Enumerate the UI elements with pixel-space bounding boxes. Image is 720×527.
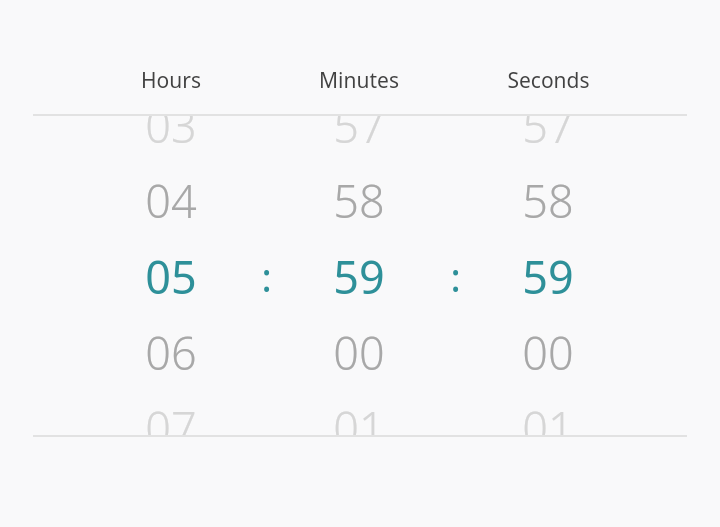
staticText: 00	[333, 322, 385, 383]
staticText: 01	[333, 397, 385, 436]
button[interactable]: Minutes	[259, 62, 459, 98]
staticText: Seconds	[507, 66, 590, 95]
button[interactable]: Seconds	[448, 62, 648, 98]
staticText: 58	[522, 170, 574, 231]
staticText: 58	[333, 170, 385, 231]
staticText: 07	[145, 397, 197, 436]
staticText: 59	[522, 246, 574, 307]
staticText: Hours	[141, 66, 201, 95]
staticText: 00	[522, 322, 574, 383]
staticText: 01	[522, 397, 574, 436]
button[interactable]: Hours picker	[96, 114, 246, 436]
staticText: 59	[333, 246, 385, 307]
staticText: 05	[145, 246, 197, 307]
staticText: Minutes	[319, 66, 399, 95]
staticText: 06	[145, 322, 197, 383]
staticText: 57	[333, 114, 385, 156]
button[interactable]: Seconds picker	[473, 114, 623, 436]
button[interactable]: Minutes picker	[284, 114, 434, 436]
staticText: :	[450, 249, 461, 303]
staticText: 57	[522, 114, 574, 156]
staticText: 04	[145, 170, 197, 231]
staticText: 03	[145, 114, 197, 156]
button[interactable]: Hours	[71, 62, 271, 98]
staticText: :	[261, 249, 272, 303]
